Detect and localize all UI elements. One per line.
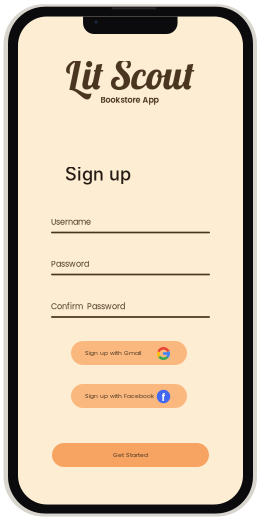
staticText: Lit Scout (64, 51, 194, 99)
staticText: Password (51, 258, 89, 270)
staticText: f (161, 390, 165, 405)
button[interactable]: Get Started (52, 443, 209, 467)
staticText: Get Started (113, 451, 148, 459)
staticText: Bookstore App (100, 94, 158, 106)
button[interactable]: Sign up with Gmail (71, 341, 187, 365)
staticText: Sign up (65, 163, 131, 185)
staticText: Sign up with Gmail (85, 349, 141, 357)
staticText: Sign up with Facebook (85, 392, 154, 400)
button[interactable]: Sign up with Facebook (71, 384, 187, 408)
staticText: Username (51, 216, 91, 228)
staticText: Confirm Password (51, 301, 125, 312)
